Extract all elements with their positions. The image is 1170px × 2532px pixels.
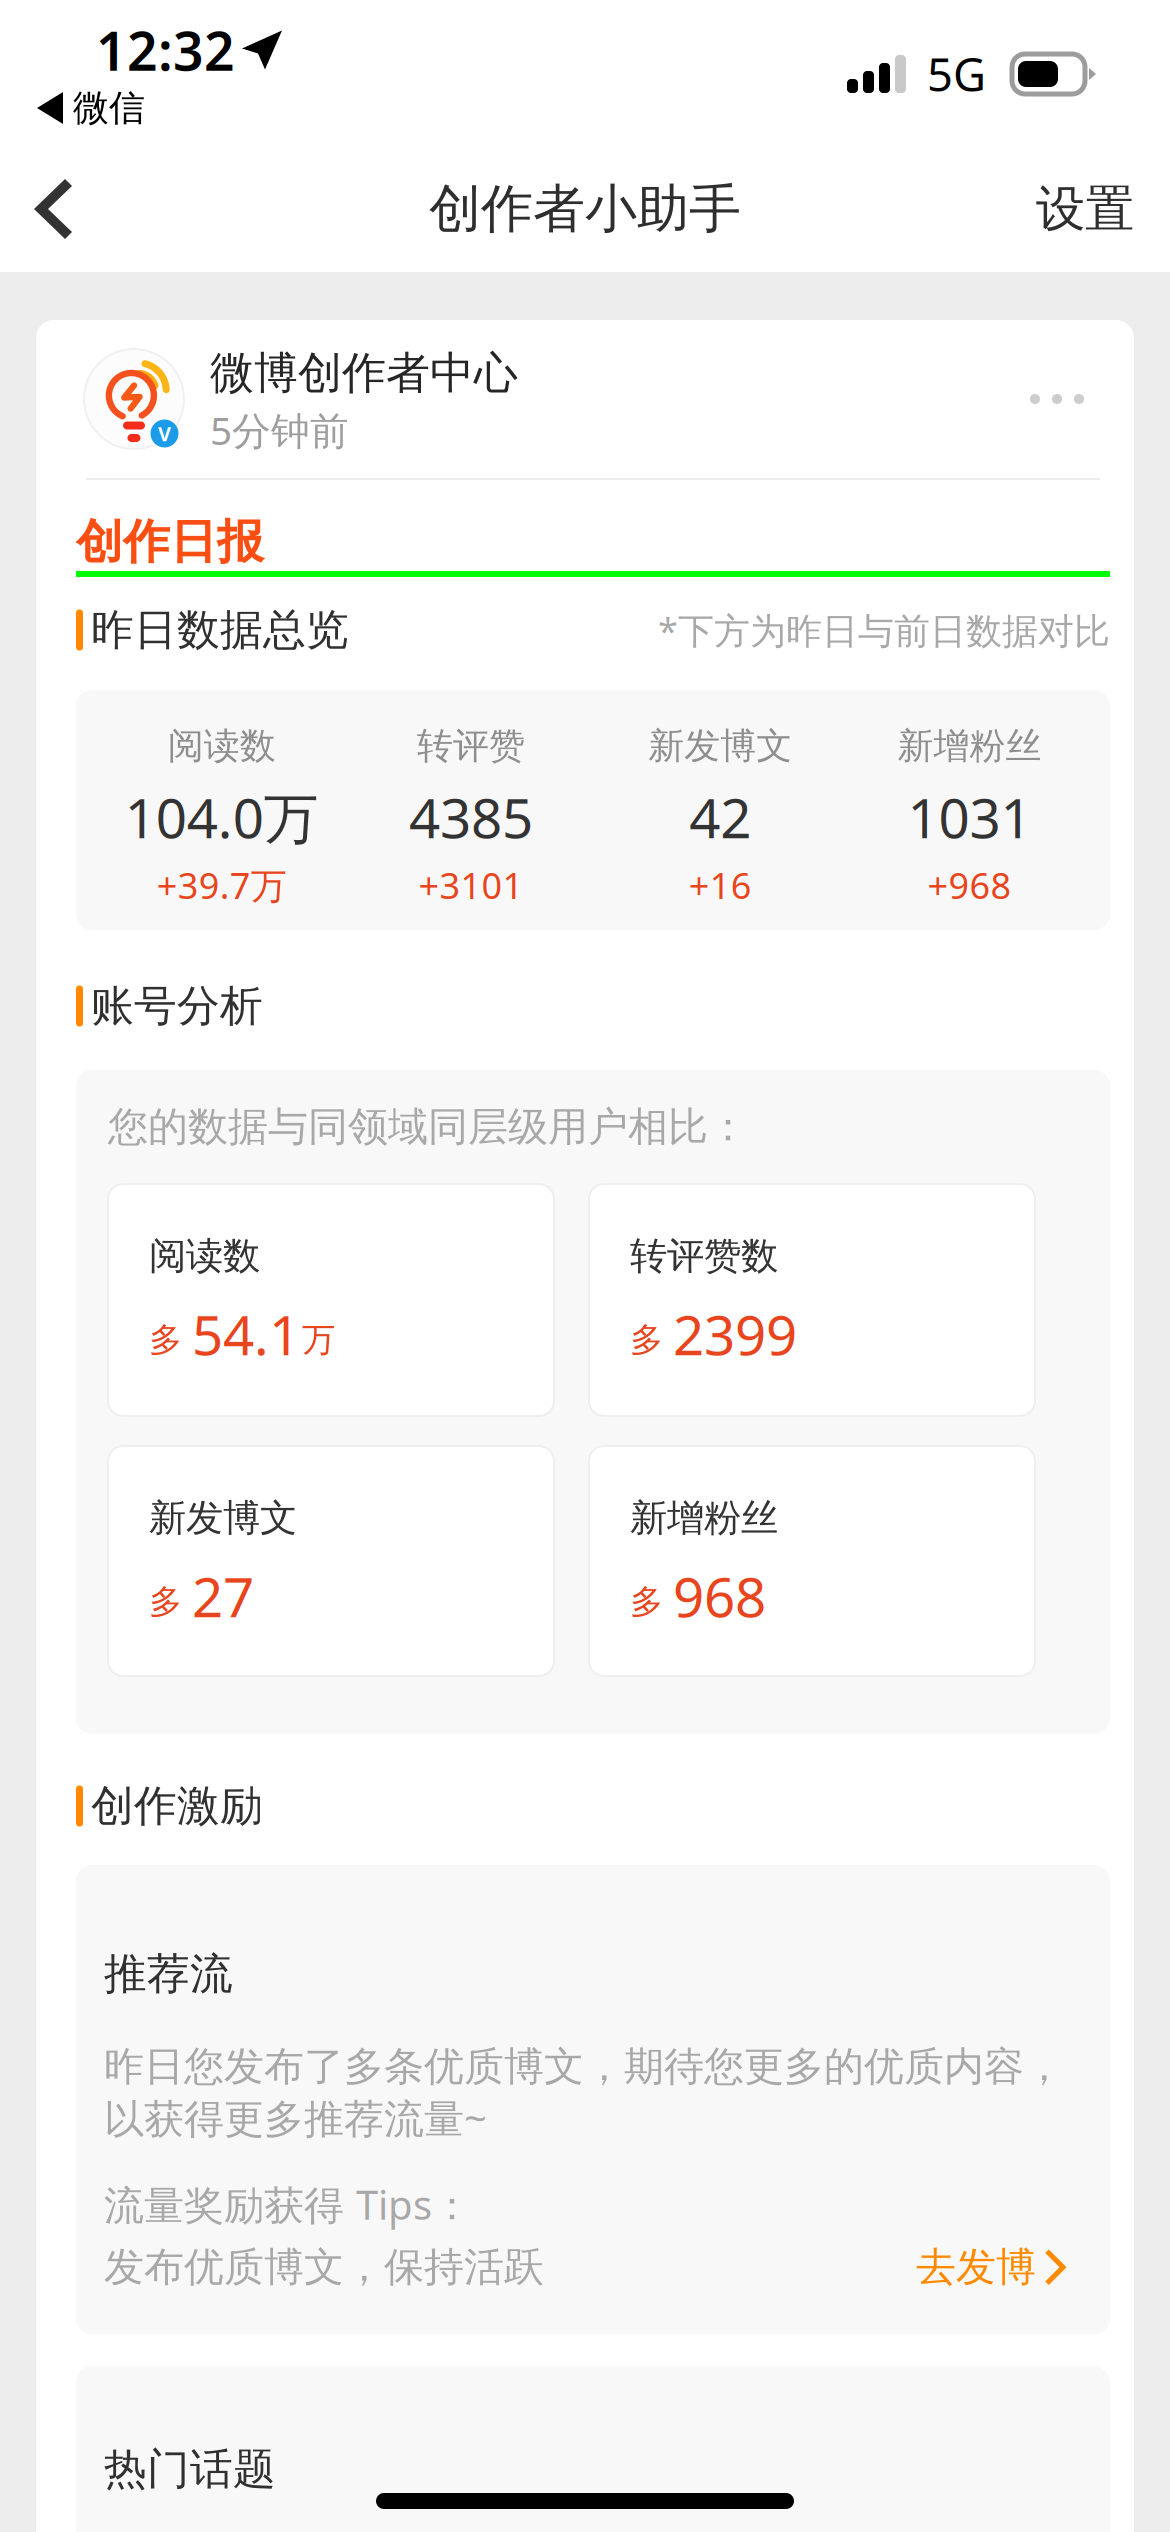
staticText: 54.1 (192, 1298, 300, 1370)
staticText: 转评赞数 (630, 1233, 778, 1279)
staticText: 多 (630, 1319, 663, 1360)
staticText: 5分钟前 (210, 404, 349, 456)
staticText: 账号分析 (91, 980, 263, 1032)
staticText: 创作激励 (91, 1780, 263, 1832)
button[interactable]: 更多 (1002, 364, 1112, 434)
button[interactable]: 设置 (996, 157, 1170, 261)
staticText: 27 (192, 1560, 254, 1632)
staticText: 发布优质博文，保持活跃 (104, 2243, 544, 2292)
staticText: 阅读数 (168, 724, 276, 768)
staticText: 转评赞 (417, 724, 525, 768)
staticText: 阅读数 (149, 1233, 260, 1279)
staticText: 新发博文 (648, 724, 792, 768)
staticText: 12:32 (96, 15, 235, 85)
staticText: 新增粉丝 (897, 724, 1041, 768)
staticText: 昨日数据总览 (91, 604, 349, 656)
staticText: 微信 (73, 86, 145, 130)
staticText: 热门话题 (104, 2443, 276, 2495)
staticText: 104.0万 (125, 781, 319, 853)
staticText: 多 (149, 1319, 182, 1360)
staticText: +3101 (418, 861, 523, 909)
staticText: 968 (673, 1560, 766, 1632)
staticText: +968 (927, 861, 1011, 909)
staticText: V (158, 420, 171, 447)
staticText: 新增粉丝 (630, 1495, 778, 1541)
staticText: 微博创作者中心 (210, 346, 518, 400)
staticText: *下方为昨日与前日数据对比 (658, 606, 1110, 654)
staticText: 创作日报 (76, 513, 264, 571)
staticText: 多 (630, 1581, 663, 1622)
button[interactable]: 返回 (0, 157, 112, 261)
staticText: 2399 (673, 1298, 797, 1370)
staticText: 万 (302, 1319, 335, 1360)
staticText: 多 (149, 1581, 182, 1622)
staticText: 设置 (1036, 179, 1134, 239)
staticText: 去发博 (916, 2243, 1036, 2292)
staticText: 创作者小助手 (429, 177, 741, 241)
staticText: 您的数据与同领域同层级用户相比： (108, 1102, 748, 1151)
staticText: 42 (689, 781, 751, 853)
button[interactable]: 去发博 (916, 2243, 1082, 2291)
staticText: +39.7万 (157, 861, 287, 909)
staticText: +16 (689, 861, 752, 909)
staticText: 4385 (409, 781, 533, 853)
staticText: 5G (927, 44, 986, 104)
staticText: 昨日您发布了多条优质博文，期待您更多的优质内容，以获得更多推荐流量~ (104, 2042, 1064, 2144)
staticText: 流量奖励获得 Tips： (104, 2178, 472, 2231)
staticText: 新发博文 (149, 1495, 297, 1541)
staticText: 推荐流 (104, 1948, 233, 2000)
staticText: 1031 (907, 781, 1031, 853)
